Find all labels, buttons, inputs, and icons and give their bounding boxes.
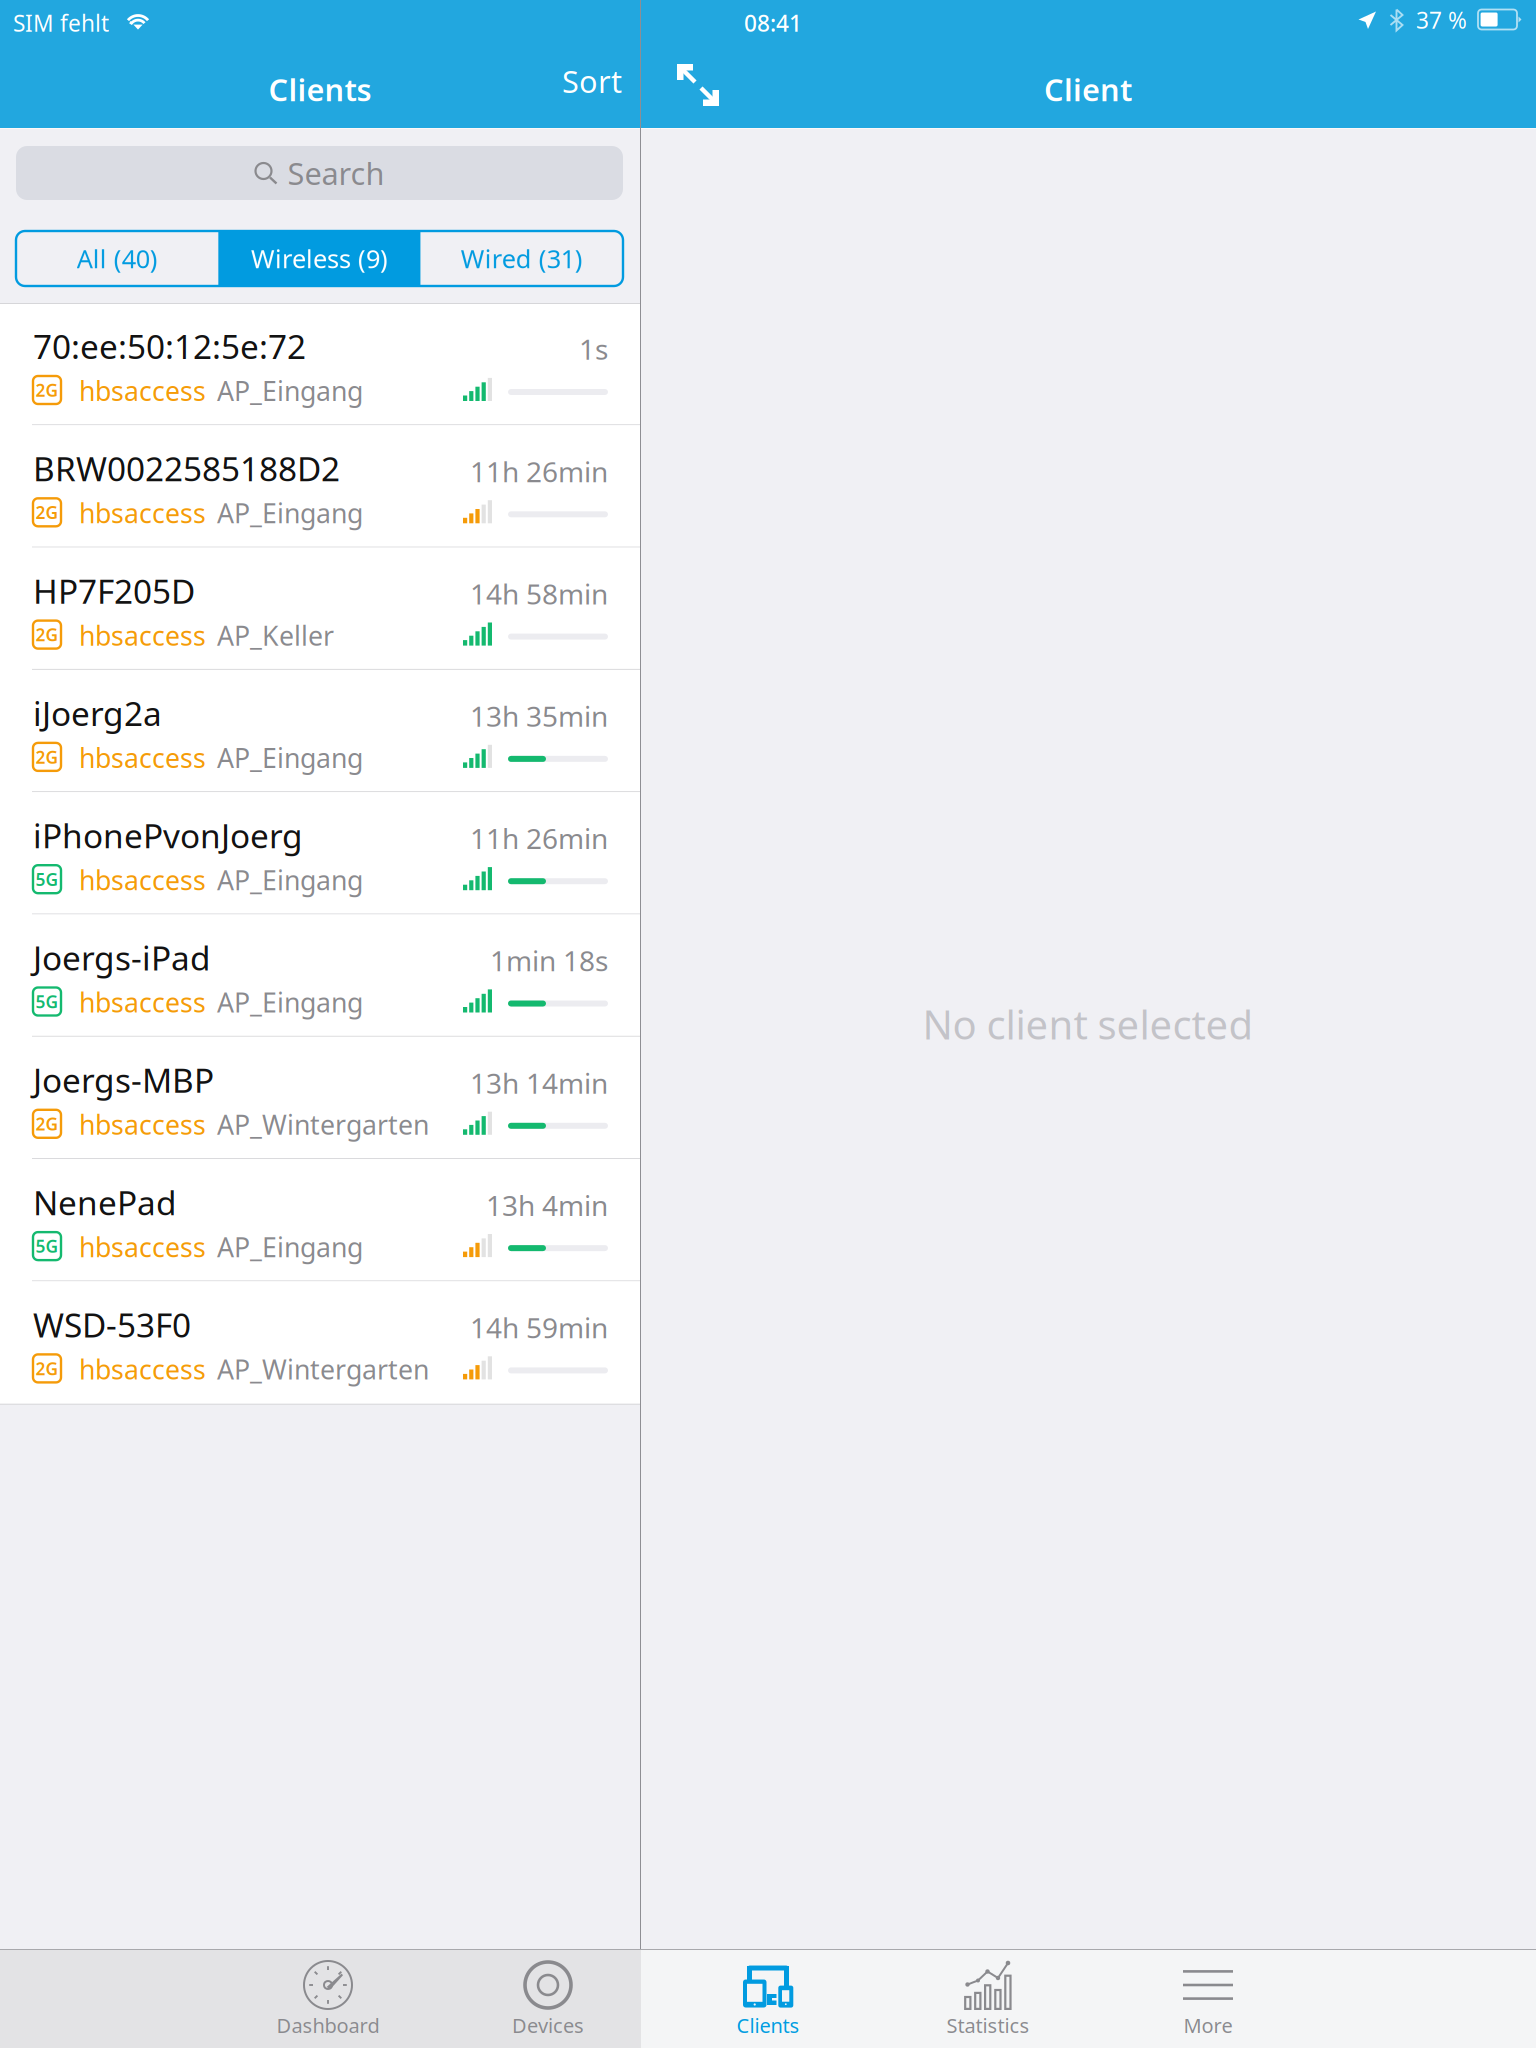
staticText: AP_Eingang <box>217 862 363 898</box>
button[interactable]: More <box>1098 1950 1318 2048</box>
staticText: Joergs-MBP <box>33 1058 214 1102</box>
staticText: 13h 35min <box>470 697 608 734</box>
staticText: 2G <box>35 1357 58 1380</box>
staticText: AP_Keller <box>217 618 334 653</box>
staticText: AP_Eingang <box>217 373 363 408</box>
button[interactable]: Expand <box>662 57 734 113</box>
staticText: BRW0022585188D2 <box>33 446 340 491</box>
staticText: 2G <box>35 378 58 401</box>
staticText: 70:ee:50:12:5e:72 <box>33 324 306 368</box>
button[interactable]: Wired (31) <box>421 231 623 286</box>
staticText: hbsaccess <box>79 373 206 408</box>
staticText: 13h 14min <box>470 1064 608 1101</box>
button[interactable]: Dashboard <box>218 1950 438 2048</box>
button[interactable]: Joergs-iPad <box>0 914 640 1037</box>
button[interactable]: BRW0022585188D2 <box>0 425 640 548</box>
staticText: hbsaccess <box>79 1107 206 1142</box>
staticText: iPhonePvonJoerg <box>33 813 303 857</box>
staticText: hbsaccess <box>79 862 206 898</box>
button[interactable]: All (40) <box>16 231 218 286</box>
staticText: HP7F205D <box>33 569 195 613</box>
staticText: Statistics <box>946 2012 1029 2039</box>
staticText: AP_Wintergarten <box>217 1351 429 1387</box>
staticText: hbsaccess <box>79 495 206 531</box>
button[interactable]: iJoerg2a <box>0 670 640 792</box>
staticText: 11h 26min <box>470 820 608 857</box>
staticText: No client selected <box>922 997 1253 1050</box>
staticText: hbsaccess <box>79 984 206 1020</box>
staticText: 2G <box>35 623 58 646</box>
staticText: AP_Wintergarten <box>217 1107 429 1142</box>
staticText: hbsaccess <box>79 1229 206 1264</box>
staticText: AP_Eingang <box>217 495 363 531</box>
staticText: 5G <box>35 990 58 1013</box>
staticText: Wireless (9) <box>251 242 388 275</box>
button[interactable]: HP7F205D <box>0 548 640 670</box>
staticText: 13h 4min <box>486 1186 608 1224</box>
staticText: All (40) <box>77 242 158 275</box>
staticText: 5G <box>35 868 58 891</box>
staticText: More <box>1183 2012 1232 2039</box>
staticText: iJoerg2a <box>33 691 162 735</box>
button[interactable]: iPhonePvonJoerg <box>0 792 640 914</box>
button[interactable]: Sort <box>512 58 622 104</box>
staticText: 11h 26min <box>470 453 608 490</box>
staticText: Clients <box>736 2012 799 2039</box>
staticText: NenePad <box>33 1180 177 1224</box>
button[interactable]: Statistics <box>878 1950 1098 2048</box>
staticText: Clients <box>268 69 371 110</box>
button[interactable]: NenePad <box>0 1159 640 1281</box>
staticText: AP_Eingang <box>217 1229 363 1264</box>
staticText: 37 % <box>1416 5 1467 35</box>
button[interactable]: 70:ee:50:12:5e:72 <box>0 303 640 425</box>
staticText: 2G <box>35 501 58 524</box>
staticText: WSD-53F0 <box>33 1302 191 1347</box>
staticText: Dashboard <box>276 2012 379 2039</box>
staticText: 2G <box>35 745 58 768</box>
staticText: Sort <box>562 61 622 101</box>
staticText: hbsaccess <box>79 1351 206 1387</box>
button[interactable]: Wireless (9) <box>218 231 421 286</box>
button[interactable]: Clients <box>658 1950 878 2048</box>
staticText: 08:41 <box>744 8 802 38</box>
button[interactable]: Devices <box>438 1950 658 2048</box>
staticText: 14h 58min <box>470 575 608 612</box>
button[interactable]: Joergs-MBP <box>0 1037 640 1159</box>
button[interactable]: WSD-53F0 <box>0 1281 640 1404</box>
staticText: 14h 59min <box>470 1309 608 1346</box>
staticText: 1s <box>579 330 608 368</box>
staticText: Wired (31) <box>461 242 583 275</box>
staticText: Client <box>1044 69 1132 110</box>
staticText: SIM fehlt <box>13 8 109 38</box>
button[interactable]: Search <box>16 146 623 200</box>
staticText: 1min 18s <box>490 942 608 979</box>
staticText: Search <box>287 153 384 193</box>
staticText: AP_Eingang <box>217 984 363 1020</box>
staticText: Joergs-iPad <box>33 935 211 980</box>
staticText: 5G <box>35 1235 58 1258</box>
staticText: hbsaccess <box>79 740 206 775</box>
staticText: 2G <box>35 1112 58 1135</box>
staticText: AP_Eingang <box>217 740 363 775</box>
staticText: hbsaccess <box>79 618 206 653</box>
staticText: Devices <box>512 2012 584 2039</box>
